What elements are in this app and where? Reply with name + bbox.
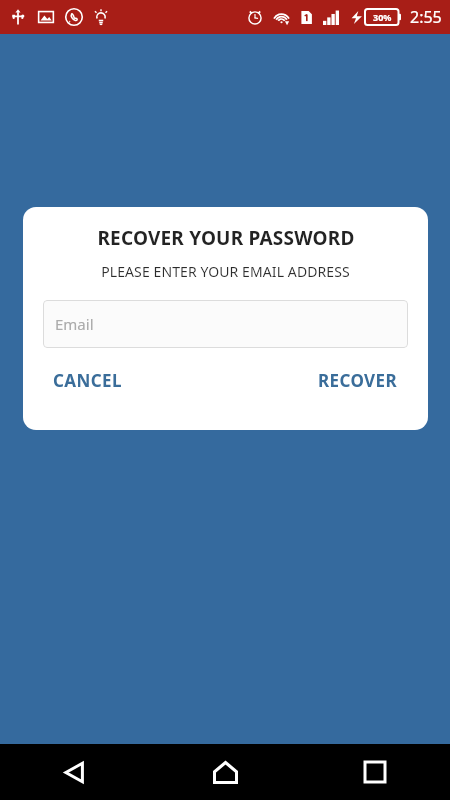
- button[interactable]: RECOVER: [302, 360, 414, 401]
- button[interactable]: Back: [0, 744, 150, 800]
- button[interactable]: Recent apps: [300, 744, 450, 800]
- button[interactable]: CANCEL: [37, 360, 138, 401]
- staticText: RECOVER YOUR PASSWORD: [97, 225, 355, 251]
- staticText: RECOVER: [318, 369, 398, 392]
- staticText: Email: [55, 314, 94, 334]
- staticText: 2:55: [410, 6, 442, 28]
- staticText: PLEASE ENTER YOUR EMAIL ADDRESS: [101, 262, 350, 281]
- button[interactable]: Email: [43, 300, 408, 348]
- staticText: CANCEL: [53, 369, 122, 392]
- button[interactable]: Home: [150, 744, 300, 800]
- staticText: 30%: [373, 11, 392, 23]
